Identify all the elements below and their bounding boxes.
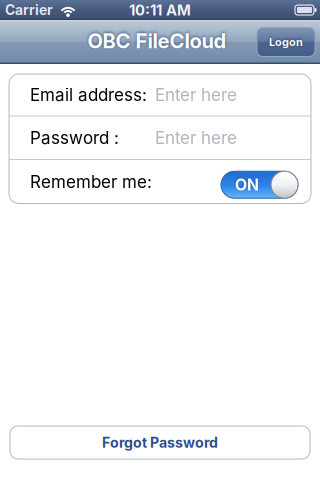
staticText: Logon: [269, 35, 303, 49]
staticText: Email address:: [30, 84, 147, 105]
button[interactable]: Password : text field: [9, 116, 311, 159]
button[interactable]: Forgot Password: [10, 426, 310, 459]
staticText: Enter here: [155, 84, 237, 105]
staticText: Enter here: [155, 127, 237, 148]
staticText: Remember me:: [30, 171, 152, 192]
button[interactable]: Remember me toggle, ON: [221, 168, 298, 195]
staticText: Forgot Password: [102, 434, 218, 451]
staticText: Password :: [30, 127, 119, 148]
staticText: Carrier: [5, 2, 53, 18]
staticText: 10:11 AM: [129, 1, 191, 19]
button[interactable]: Email address: text field: [9, 74, 311, 115]
button[interactable]: Logon: [257, 27, 315, 56]
staticText: OBC FileCloud: [87, 29, 226, 53]
staticText: ON: [235, 175, 259, 194]
